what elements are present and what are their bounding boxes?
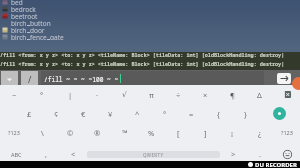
button[interactable]: Next [220,144,247,164]
staticText: ABC [11,151,22,158]
staticText: ¢ [54,109,59,119]
button[interactable]: Backspace [273,85,300,104]
button[interactable]: /fill ~ ~ ~ ~100 ~ ~ [41,71,264,86]
staticText: . [259,149,262,159]
staticText: ] [204,128,207,138]
staticText: / [28,73,32,85]
staticText: < [71,149,76,159]
staticText: birch [11,19,27,26]
button[interactable]: ?123 [0,123,28,142]
staticText: Δ [257,90,262,100]
staticText: ¥ [108,109,113,119]
staticText: ^ [135,109,140,119]
button[interactable]: Emoji [274,144,300,164]
staticText: % [148,128,155,138]
staticText: /fill ~ ~ ~ ~100 ~ ~ [44,75,119,83]
staticText: ® [94,128,101,138]
staticText: , [45,149,48,159]
staticText: = [189,109,194,119]
staticText: \ [41,128,44,138]
button[interactable]: \ [28,123,56,142]
button[interactable]: ¥ [97,104,124,123]
button[interactable]: € [70,104,97,123]
staticText: · [96,90,99,100]
staticText: ?123 [281,129,293,136]
staticText: © [67,128,74,138]
staticText: ¶ [230,90,235,100]
button[interactable]: Hide [1,71,18,87]
button[interactable]: Enter [259,104,300,123]
button[interactable]: [ [165,123,192,142]
staticText: > [231,149,236,159]
staticText: £ [27,109,32,119]
staticText: fence [30,33,47,40]
button[interactable]: × [192,85,219,104]
button[interactable]: { [205,104,232,123]
button[interactable]: ™ [111,123,138,142]
staticText: ¡ [231,128,234,138]
button[interactable]: Δ [246,85,273,104]
button[interactable]: √ [111,85,138,104]
button[interactable]: Send [277,73,291,84]
staticText: ~ [12,90,17,100]
button[interactable]: π [138,85,165,104]
button[interactable]: ° [151,104,178,123]
staticText: √ [122,90,127,99]
staticText: gate [50,33,64,40]
button[interactable]: ¢ [43,104,70,123]
button[interactable]: ¿ [246,123,273,142]
staticText: π [149,90,154,100]
button[interactable]: ° [28,85,56,104]
staticText: € [81,109,86,119]
staticText: door [30,26,45,33]
button[interactable]: ~ [0,85,28,104]
staticText: ° [40,90,44,100]
button[interactable]: ] [192,123,219,142]
staticText: birch [11,26,27,33]
button[interactable]: % [138,123,165,142]
button[interactable]: ABC [0,144,33,164]
staticText: [ [177,128,180,138]
staticText: ™ [122,128,128,138]
button[interactable]: / [21,71,38,87]
staticText: ?123 [8,129,20,136]
staticText: ¿ [258,128,262,138]
button[interactable]: , [33,144,60,164]
staticText: bed [11,0,23,5]
button[interactable]: } [232,104,259,123]
staticText: { [217,109,220,119]
staticText: bedrock [11,5,36,12]
button[interactable]: Recorder [292,77,300,90]
staticText: DU RECORDER [255,161,297,168]
staticText: ÷ [176,90,181,100]
staticText: ° [163,109,167,119]
staticText: birch [11,33,27,40]
staticText: beetroot [11,12,38,19]
staticText: } [244,109,247,119]
button[interactable]: . [247,144,274,164]
staticText: /fill <from: x y z> <to: x y z> <tileNam… [0,52,300,61]
staticText: | [68,90,73,100]
button[interactable]: QWERTY [87,151,220,158]
button[interactable]: ^ [124,104,151,123]
staticText: QWERTY [143,152,164,158]
button[interactable]: Previous [60,144,87,164]
staticText: button [30,19,51,26]
button[interactable]: | [56,85,84,104]
staticText: × [203,90,208,100]
button[interactable]: © [56,123,84,142]
button[interactable]: = [178,104,205,123]
button[interactable]: ¡ [219,123,246,142]
staticText: /fill <from: x y z> <to: x y z> <tileNam… [0,61,300,70]
button[interactable]: ¶ [219,85,246,104]
button[interactable]: ® [84,123,111,142]
button[interactable]: ?123 [273,123,300,142]
button[interactable]: £ [15,104,43,123]
button[interactable]: ÷ [165,85,192,104]
